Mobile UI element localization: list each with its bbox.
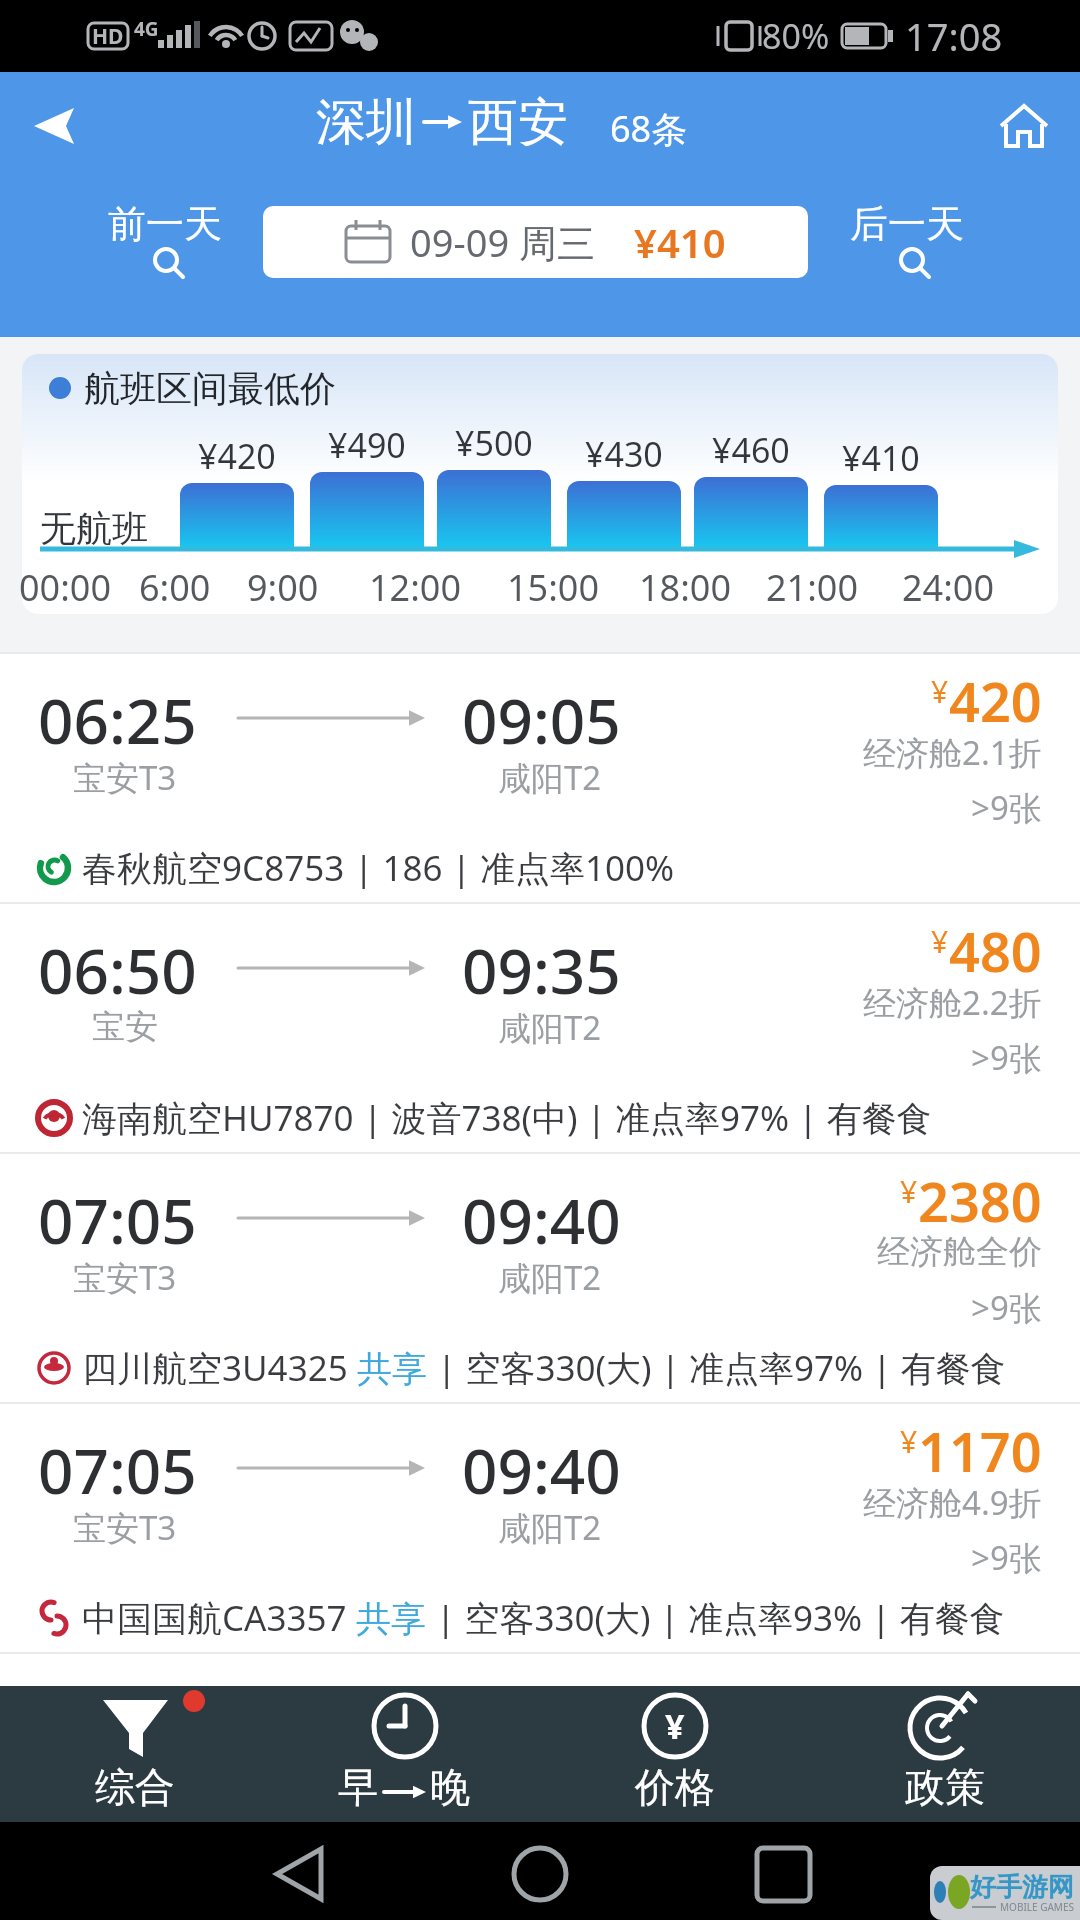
button[interactable] [994, 98, 1054, 154]
staticText: ¥ [900, 1421, 918, 1462]
staticText: | 186 | 准点率100% [345, 844, 675, 892]
button[interactable] [263, 206, 808, 278]
button[interactable]: 07:05 [0, 1152, 1080, 1402]
staticText: 海南航空HU7870 [82, 1094, 354, 1142]
staticText: 经济舱2.1折 [863, 730, 1042, 775]
staticText: 综合 [95, 1762, 175, 1812]
staticText: 00:00 [19, 563, 112, 612]
button[interactable]: 前一天 [100, 186, 230, 262]
staticText: 后一天 [850, 200, 964, 248]
staticText: | 空客330(大) | 准点率93% | 有餐食 [427, 1594, 1005, 1642]
staticText: 09:40 [462, 1428, 621, 1512]
staticText: 政策 [905, 1762, 985, 1812]
staticText: 480 [949, 914, 1042, 978]
staticText: 深圳 [316, 91, 416, 154]
staticText: >9张 [971, 1535, 1042, 1580]
staticText: 15:00 [507, 563, 600, 612]
staticText: HD [92, 22, 124, 51]
button[interactable]: 06:25 [0, 652, 1080, 902]
staticText: 06:50 [38, 928, 197, 1012]
staticText: 09:05 [462, 678, 621, 762]
staticText: ¥ [931, 671, 949, 712]
staticText: 06:25 [38, 678, 197, 762]
staticText: 18:00 [639, 563, 732, 612]
staticText: 共享 [348, 1344, 428, 1392]
staticText: 07:05 [38, 1428, 197, 1512]
staticText: ¥410 [634, 215, 726, 269]
button[interactable]: 后一天 [842, 186, 972, 262]
staticText: 经济舱2.2折 [863, 980, 1042, 1025]
staticText: 6:00 [139, 563, 211, 612]
staticText: 经济舱4.9折 [863, 1480, 1042, 1525]
staticText: 好手游网 [970, 1871, 1074, 1904]
staticText: 中国国航CA3357 [82, 1594, 347, 1642]
staticText: 80% [762, 13, 830, 59]
staticText: 07:05 [38, 1178, 197, 1262]
staticText: 航班区间最低价 [84, 366, 336, 411]
staticText: 宝安T3 [73, 1505, 177, 1550]
staticText: 09:40 [462, 1178, 621, 1262]
staticText: >9张 [971, 1035, 1042, 1080]
staticText: 共享 [347, 1594, 427, 1642]
staticText: | 空客330(大) | 准点率97% | 有餐食 [428, 1344, 1006, 1392]
button[interactable]: 07:05 [0, 1402, 1080, 1652]
staticText: >9张 [971, 1285, 1042, 1330]
staticText: 21:00 [766, 563, 859, 612]
staticText: ¥490 [328, 422, 406, 468]
staticText: ¥ [900, 1171, 918, 1212]
staticText: 咸阳T2 [498, 1005, 602, 1050]
staticText: ¥500 [455, 420, 533, 466]
staticText: ¥410 [842, 435, 920, 481]
staticText: 西安 [468, 91, 568, 154]
button[interactable] [540, 1686, 810, 1822]
staticText: 宝安 [92, 1006, 158, 1048]
staticText: 420 [949, 664, 1042, 728]
staticText: ¥420 [198, 433, 276, 479]
staticText: 前一天 [108, 200, 222, 248]
staticText: MOBILE GAMES [1000, 1900, 1074, 1914]
button[interactable] [0, 1686, 270, 1822]
button[interactable] [20, 95, 90, 159]
staticText: 经济舱全价 [877, 1231, 1042, 1273]
staticText: 早 [338, 1762, 378, 1812]
staticText: 09:35 [462, 928, 621, 1012]
staticText: 1170 [918, 1414, 1042, 1478]
staticText: ¥ [931, 921, 949, 962]
staticText: 宝安T3 [73, 755, 177, 800]
staticText: ¥430 [585, 431, 663, 477]
staticText: 4G [134, 16, 159, 42]
staticText: 17:08 [905, 10, 1003, 62]
staticText: ¥ [665, 1703, 685, 1749]
staticText: 咸阳T2 [498, 1505, 602, 1550]
staticText: 宝安T3 [73, 1255, 177, 1300]
staticText: 2380 [918, 1164, 1042, 1228]
button[interactable]: 06:50 [0, 902, 1080, 1152]
button[interactable] [810, 1686, 1080, 1822]
staticText: | 波音738(中) | 准点率97% | 有餐食 [354, 1094, 932, 1142]
button[interactable] [270, 1686, 540, 1822]
staticText: 晚 [430, 1762, 470, 1812]
staticText: 09-09 周三 [410, 216, 596, 268]
staticText: ¥460 [712, 427, 790, 473]
staticText: >9张 [971, 785, 1042, 830]
staticText: 咸阳T2 [498, 1255, 602, 1300]
staticText: 24:00 [902, 563, 995, 612]
staticText: 68条 [610, 104, 688, 153]
staticText: 价格 [635, 1762, 715, 1812]
staticText: 无航班 [40, 506, 148, 551]
staticText: 咸阳T2 [498, 755, 602, 800]
staticText: 四川航空3U4325 [82, 1344, 348, 1392]
staticText: 12:00 [369, 563, 462, 612]
staticText: 9:00 [247, 563, 319, 612]
staticText: 春秋航空9C8753 [82, 844, 345, 892]
